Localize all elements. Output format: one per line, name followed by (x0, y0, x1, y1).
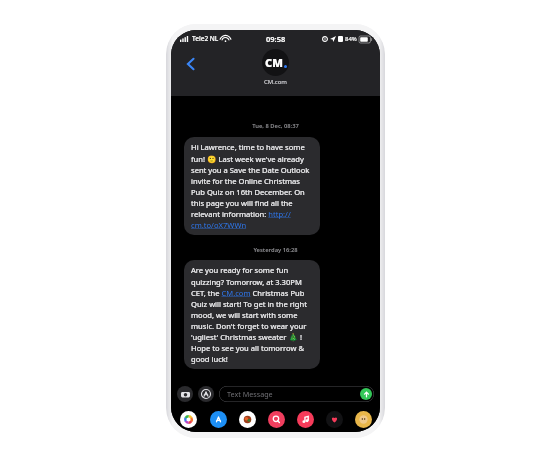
staticText: CM.com (264, 78, 287, 86)
staticText: 84% (345, 35, 357, 43)
button[interactable]: Back (179, 52, 203, 76)
staticText: CM (265, 55, 283, 70)
staticText: Tue, 8 Dec, 08:37 (171, 122, 380, 130)
staticText: Text Message (227, 389, 273, 399)
staticText: 09:58 (266, 34, 286, 44)
button[interactable]: Food (234, 410, 260, 429)
staticText: Hi Lawrence, time to have some fun! 🙂 La… (191, 142, 313, 230)
button[interactable]: Search (263, 410, 289, 429)
button[interactable]: Photos (175, 410, 202, 429)
button[interactable]: CM (262, 49, 289, 86)
staticText: Yesterday 16:28 (171, 246, 380, 254)
button[interactable]: Send (360, 388, 372, 400)
button[interactable]: Hi Lawrence, time to have some fun! 🙂 La… (184, 137, 320, 235)
button[interactable]: App Store (205, 410, 231, 429)
button[interactable]: Camera (177, 386, 193, 402)
button[interactable]: Memoji (350, 410, 376, 429)
button[interactable]: Health (321, 410, 347, 429)
button[interactable]: Text Message (219, 386, 374, 402)
button[interactable]: Apps (198, 386, 214, 402)
staticText: Tele2 NL (192, 34, 219, 43)
button[interactable]: Are you ready for some fun quizzing? Tom… (184, 260, 320, 369)
button[interactable]: Music (292, 410, 318, 429)
staticText: Are you ready for some fun quizzing? Tom… (191, 265, 313, 364)
